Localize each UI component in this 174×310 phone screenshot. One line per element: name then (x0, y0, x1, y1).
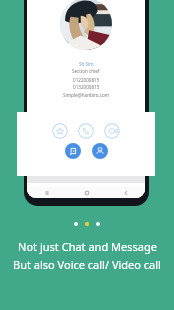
button[interactable]: Message (65, 143, 81, 159)
staticText: Simple@hanbiro.com (63, 92, 110, 98)
button[interactable]: Home (67, 187, 106, 198)
staticText: Not just Chat and Message (18, 239, 157, 254)
button[interactable]: Recents (27, 187, 67, 198)
staticText: 0132000815 (73, 84, 100, 90)
staticText: But also Voice call/ Video call (13, 257, 161, 272)
button[interactable]: Contact (92, 143, 108, 159)
staticText: Sh Sim (79, 61, 94, 67)
button[interactable]: Video call (104, 123, 120, 139)
button[interactable]: Favorite (52, 123, 68, 139)
staticText: Section chief (72, 68, 100, 74)
button[interactable]: Call (78, 123, 94, 139)
button[interactable]: Back (106, 187, 145, 198)
staticText: 0122000815 (73, 77, 100, 83)
